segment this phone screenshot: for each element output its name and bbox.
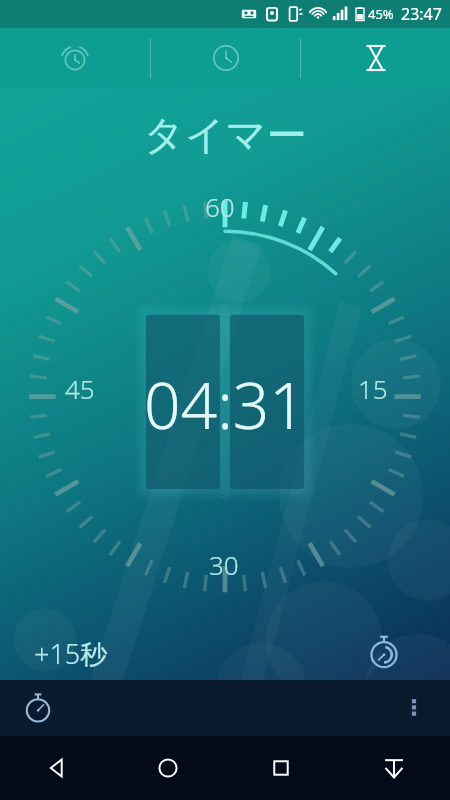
button[interactable]: Start timer xyxy=(362,630,406,674)
staticText: 15 xyxy=(358,371,388,406)
button[interactable]: Back xyxy=(0,736,112,800)
staticText: 04:31 xyxy=(144,361,306,448)
button[interactable]: More options xyxy=(392,686,436,730)
staticText: 30 xyxy=(209,547,239,582)
staticText: タイマー xyxy=(0,110,450,160)
button[interactable]: Home xyxy=(112,736,224,800)
staticText: 45 xyxy=(65,371,95,406)
staticText: 45% xyxy=(368,5,394,23)
button[interactable]: Hide navigation bar xyxy=(337,736,450,800)
button[interactable]: Alarm xyxy=(0,28,150,88)
button[interactable]: Clock xyxy=(151,28,300,88)
staticText: 60 xyxy=(205,189,235,224)
button[interactable]: 04:31 xyxy=(0,361,450,448)
staticText: 23:47 xyxy=(401,3,442,25)
button[interactable]: Stopwatch xyxy=(16,686,60,730)
button[interactable]: Recents xyxy=(224,736,337,800)
button[interactable]: +15秒 xyxy=(34,635,108,672)
staticText: +15秒 xyxy=(34,635,108,672)
button[interactable]: Timer xyxy=(301,28,450,88)
